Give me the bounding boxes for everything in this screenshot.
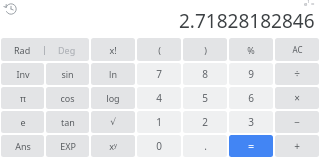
button[interactable]: cos [46, 87, 89, 109]
button[interactable]: % [229, 38, 273, 61]
staticText: √ [110, 117, 116, 127]
button[interactable]: Rad [1, 38, 89, 61]
staticText: e¹ = [304, 0, 315, 8]
button[interactable]: − [275, 111, 319, 133]
staticText: 2.71828182846 [179, 8, 315, 34]
button[interactable]: ) [183, 38, 227, 61]
button[interactable]: + [275, 135, 319, 157]
staticText: sin [61, 68, 74, 80]
button[interactable]: ÷ [275, 63, 319, 85]
button[interactable]: x! [91, 38, 135, 61]
staticText: EXP [60, 140, 76, 152]
staticText: Deg [58, 44, 76, 56]
button[interactable]: ( [137, 38, 181, 61]
staticText: 0 [156, 139, 162, 153]
button[interactable]: 0 [137, 135, 181, 157]
button[interactable]: AC [275, 38, 319, 61]
staticText: ln [109, 68, 117, 80]
button[interactable]: ln [91, 63, 135, 85]
staticText: x! [109, 44, 117, 56]
button[interactable]: 7 [137, 63, 181, 85]
staticText: 8 [202, 67, 208, 81]
staticText: − [294, 115, 300, 129]
button[interactable]: 3 [229, 111, 273, 133]
staticText: ÷ [294, 67, 300, 81]
button[interactable]: × [275, 87, 319, 109]
staticText: ( [158, 44, 161, 56]
button[interactable]: 2 [183, 111, 227, 133]
button[interactable]: EXP [46, 135, 89, 157]
staticText: cos [60, 92, 75, 104]
staticText: Ans [15, 140, 31, 152]
button[interactable]: = [229, 135, 273, 157]
staticText: π [20, 92, 26, 104]
staticText: 5 [202, 91, 208, 105]
button[interactable]: History [1, 0, 21, 19]
button[interactable]: e [1, 111, 44, 133]
button[interactable]: 9 [229, 63, 273, 85]
button[interactable]: π [1, 87, 44, 109]
staticText: 2 [202, 115, 208, 129]
staticText: ) [204, 44, 207, 56]
button[interactable]: . [183, 135, 227, 157]
staticText: log [106, 92, 120, 104]
button[interactable]: 8 [183, 63, 227, 85]
button[interactable]: 6 [229, 87, 273, 109]
button[interactable]: xʸ [91, 135, 135, 157]
staticText: Inv [16, 68, 30, 80]
staticText: + [294, 139, 300, 153]
staticText: . [204, 139, 207, 153]
staticText: e [20, 116, 26, 128]
staticText: xʸ [109, 140, 117, 152]
button[interactable]: tan [46, 111, 89, 133]
staticText: AC [292, 44, 303, 55]
staticText: tan [61, 116, 75, 128]
button[interactable]: √ [91, 111, 135, 133]
button[interactable]: Ans [1, 135, 44, 157]
staticText: 6 [248, 91, 254, 105]
staticText: × [294, 91, 300, 105]
button[interactable]: 5 [183, 87, 227, 109]
staticText: Rad [14, 44, 31, 56]
staticText: 7 [156, 67, 162, 81]
staticText: 4 [156, 91, 162, 105]
staticText: 3 [248, 115, 254, 129]
button[interactable]: Inv [1, 63, 44, 85]
button[interactable]: 1 [137, 111, 181, 133]
staticText: 1 [156, 115, 162, 129]
staticText: % [247, 44, 255, 56]
button[interactable]: sin [46, 63, 89, 85]
button[interactable]: log [91, 87, 135, 109]
staticText: = [248, 139, 254, 153]
button[interactable]: 4 [137, 87, 181, 109]
staticText: 9 [248, 67, 254, 81]
